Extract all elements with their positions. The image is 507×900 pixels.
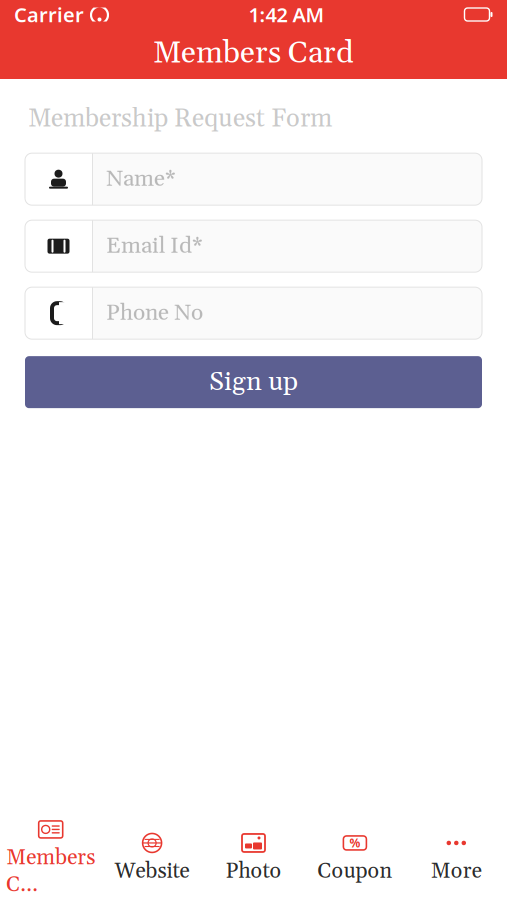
staticText: Carrier [14,1,84,28]
staticText: Website [115,858,190,885]
staticText: Members C... [6,844,95,899]
staticText: Name* [106,165,176,194]
staticText: More [431,858,482,885]
staticText: Membership Request Form [28,103,332,135]
button[interactable]: Members C... [0,832,101,898]
button[interactable]: More [406,832,507,898]
staticText: Members Card [153,34,354,73]
button[interactable]: Photo [203,832,304,898]
staticText: Phone No [106,299,203,328]
button[interactable]: Phone No [25,287,482,339]
staticText: Email Id* [106,232,203,261]
staticText: Coupon [317,858,392,885]
staticText: Photo [225,858,281,885]
button[interactable]: Name* [25,153,482,205]
staticText: % [349,835,360,851]
staticText: 1:42 AM [248,1,324,28]
button[interactable]: Email Id* [25,220,482,272]
staticText: Sign up [209,365,298,399]
button[interactable]: Sign up [25,356,482,408]
button[interactable]: % [304,832,406,898]
button[interactable]: Website [101,832,203,898]
